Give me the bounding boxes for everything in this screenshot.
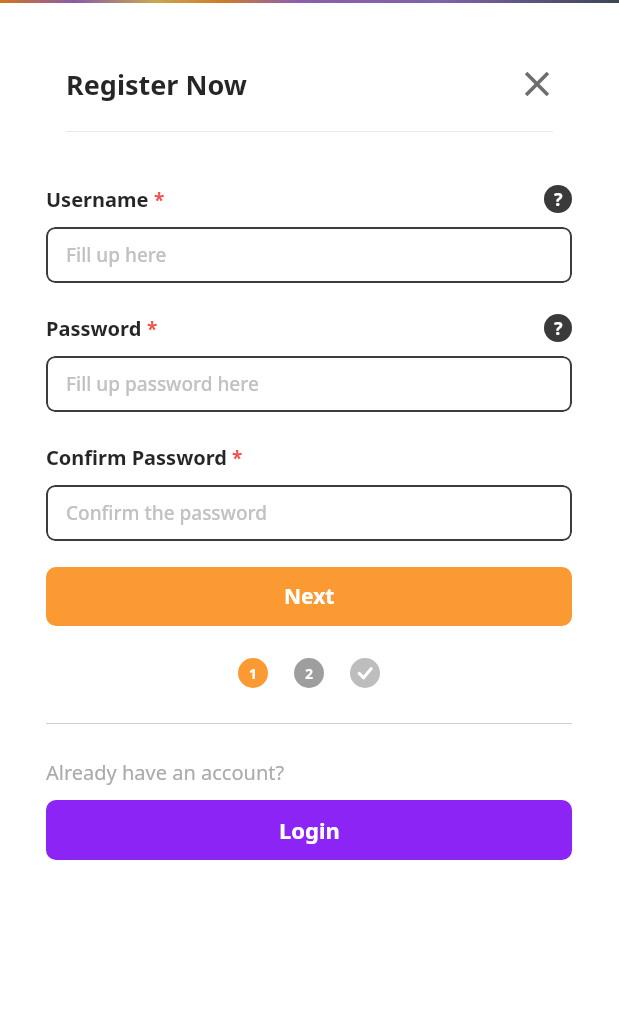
staticText: Fill up here (66, 242, 167, 268)
button[interactable]: Step 2 (294, 658, 324, 688)
button[interactable]: Confirm the password (46, 485, 572, 541)
button[interactable]: Next (46, 567, 572, 626)
button[interactable]: Close (517, 64, 557, 104)
staticText: 1 (249, 664, 258, 683)
button[interactable]: Login (46, 800, 572, 860)
staticText: Confirm Password (46, 444, 227, 471)
button[interactable]: Help (544, 314, 572, 342)
staticText: Next (284, 582, 335, 611)
staticText: 2 (305, 664, 314, 683)
staticText: Username (46, 186, 149, 213)
staticText: ? (554, 187, 563, 212)
staticText: Fill up password here (66, 371, 259, 397)
staticText: * (232, 445, 243, 471)
button[interactable]: Fill up password here (46, 356, 572, 412)
staticText: Register Now (66, 66, 247, 103)
button[interactable]: Step complete (350, 658, 380, 688)
staticText: * (154, 187, 165, 213)
staticText: Password (46, 315, 142, 342)
staticText: ? (554, 316, 563, 341)
button[interactable]: Fill up here (46, 227, 572, 283)
staticText: Login (279, 815, 340, 845)
staticText: * (147, 316, 158, 342)
button[interactable]: Help (544, 185, 572, 213)
button[interactable]: Already have an account? (46, 759, 285, 786)
staticText: Confirm the password (66, 500, 267, 526)
button[interactable]: Step 1 (238, 658, 268, 688)
